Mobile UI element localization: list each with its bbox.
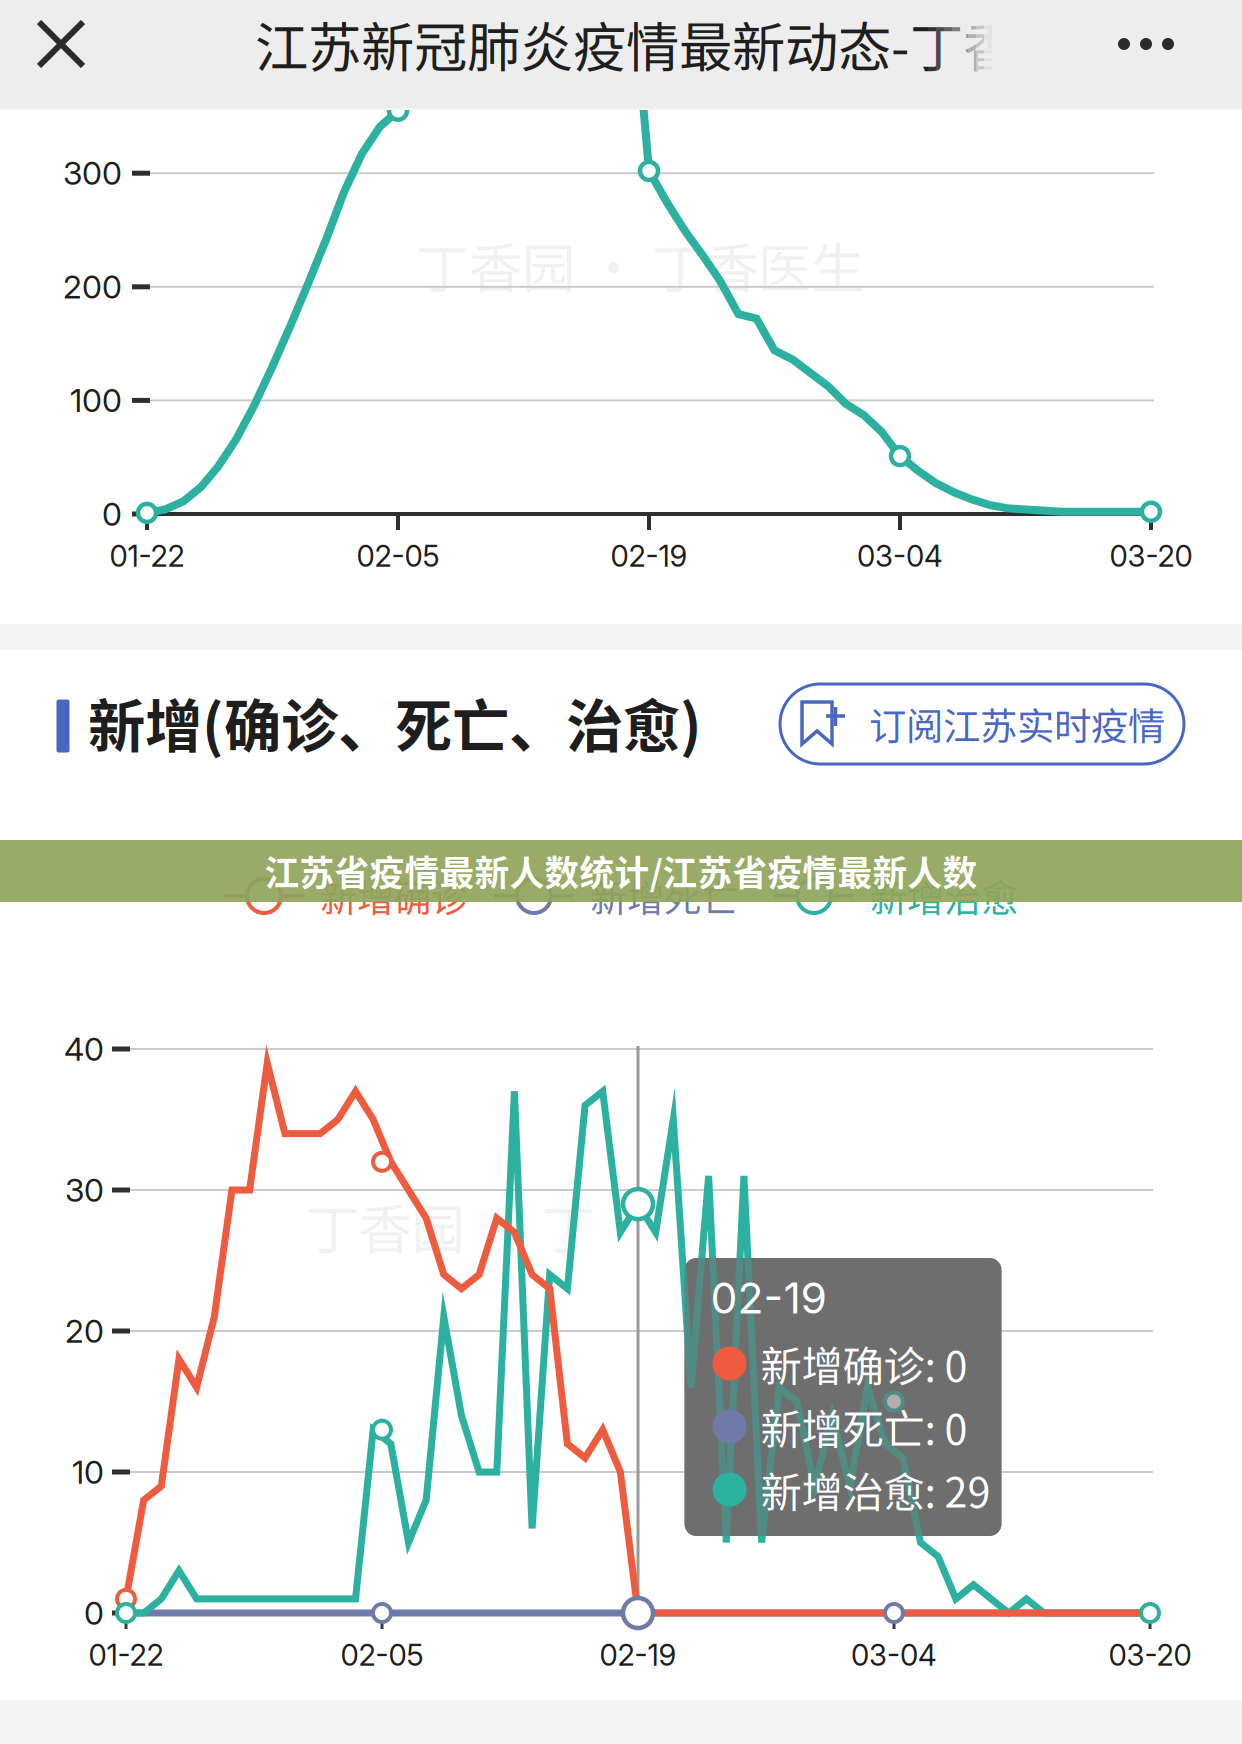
staticText: 0	[84, 1594, 104, 1632]
staticText: 订阅江苏实时疫情	[869, 697, 1165, 751]
staticText: 20	[65, 1312, 104, 1350]
staticText: 02-05	[340, 1637, 423, 1673]
staticText: 丁香园 · 丁香医生	[416, 226, 864, 304]
staticText: 新增死亡	[590, 869, 738, 923]
staticText	[760, 1397, 769, 1456]
staticText: 40	[64, 1030, 104, 1068]
staticText	[760, 1334, 769, 1393]
staticText: 03-04	[857, 538, 943, 574]
staticText: 01-22	[109, 538, 184, 574]
staticText: 新增死亡: 0	[760, 1397, 967, 1456]
staticText: 新增治愈: 29	[760, 1460, 990, 1519]
staticText: 新增治愈	[870, 869, 1018, 923]
staticText: 03-20	[1108, 1637, 1191, 1673]
staticText: 新增(确诊、死亡、治愈)	[88, 680, 702, 763]
staticText: 丁香园 · 丁	[305, 1187, 594, 1265]
staticText: 02-19	[610, 538, 687, 574]
staticText: 0	[102, 495, 122, 533]
staticText: 10	[72, 1453, 104, 1491]
staticText: 新增确诊	[320, 869, 468, 923]
staticText: 300	[63, 154, 122, 192]
staticText	[760, 1460, 769, 1519]
staticText: 02-05	[356, 538, 439, 574]
staticText: 02-19	[710, 1272, 826, 1324]
staticText: 30	[65, 1171, 104, 1209]
staticText: 01-22	[88, 1637, 163, 1673]
button[interactable]: More options	[1082, 0, 1210, 98]
staticText: 新增确诊: 0	[760, 1334, 967, 1393]
staticText: 江苏省疫情最新人数统计/江苏省疫情最新人数	[264, 846, 977, 896]
staticText: 100	[70, 381, 122, 420]
staticText: 02-19	[599, 1637, 676, 1673]
staticText	[710, 1272, 722, 1324]
staticText: 200	[63, 267, 122, 306]
staticText: 03-20	[1109, 538, 1192, 574]
button[interactable]: Close	[0, 0, 122, 108]
button[interactable]: 订阅江苏实时疫情	[780, 684, 1184, 764]
staticText: 03-04	[851, 1637, 937, 1673]
staticText: 江苏新冠肺炎疫情最新动态-丁香	[255, 5, 1016, 83]
